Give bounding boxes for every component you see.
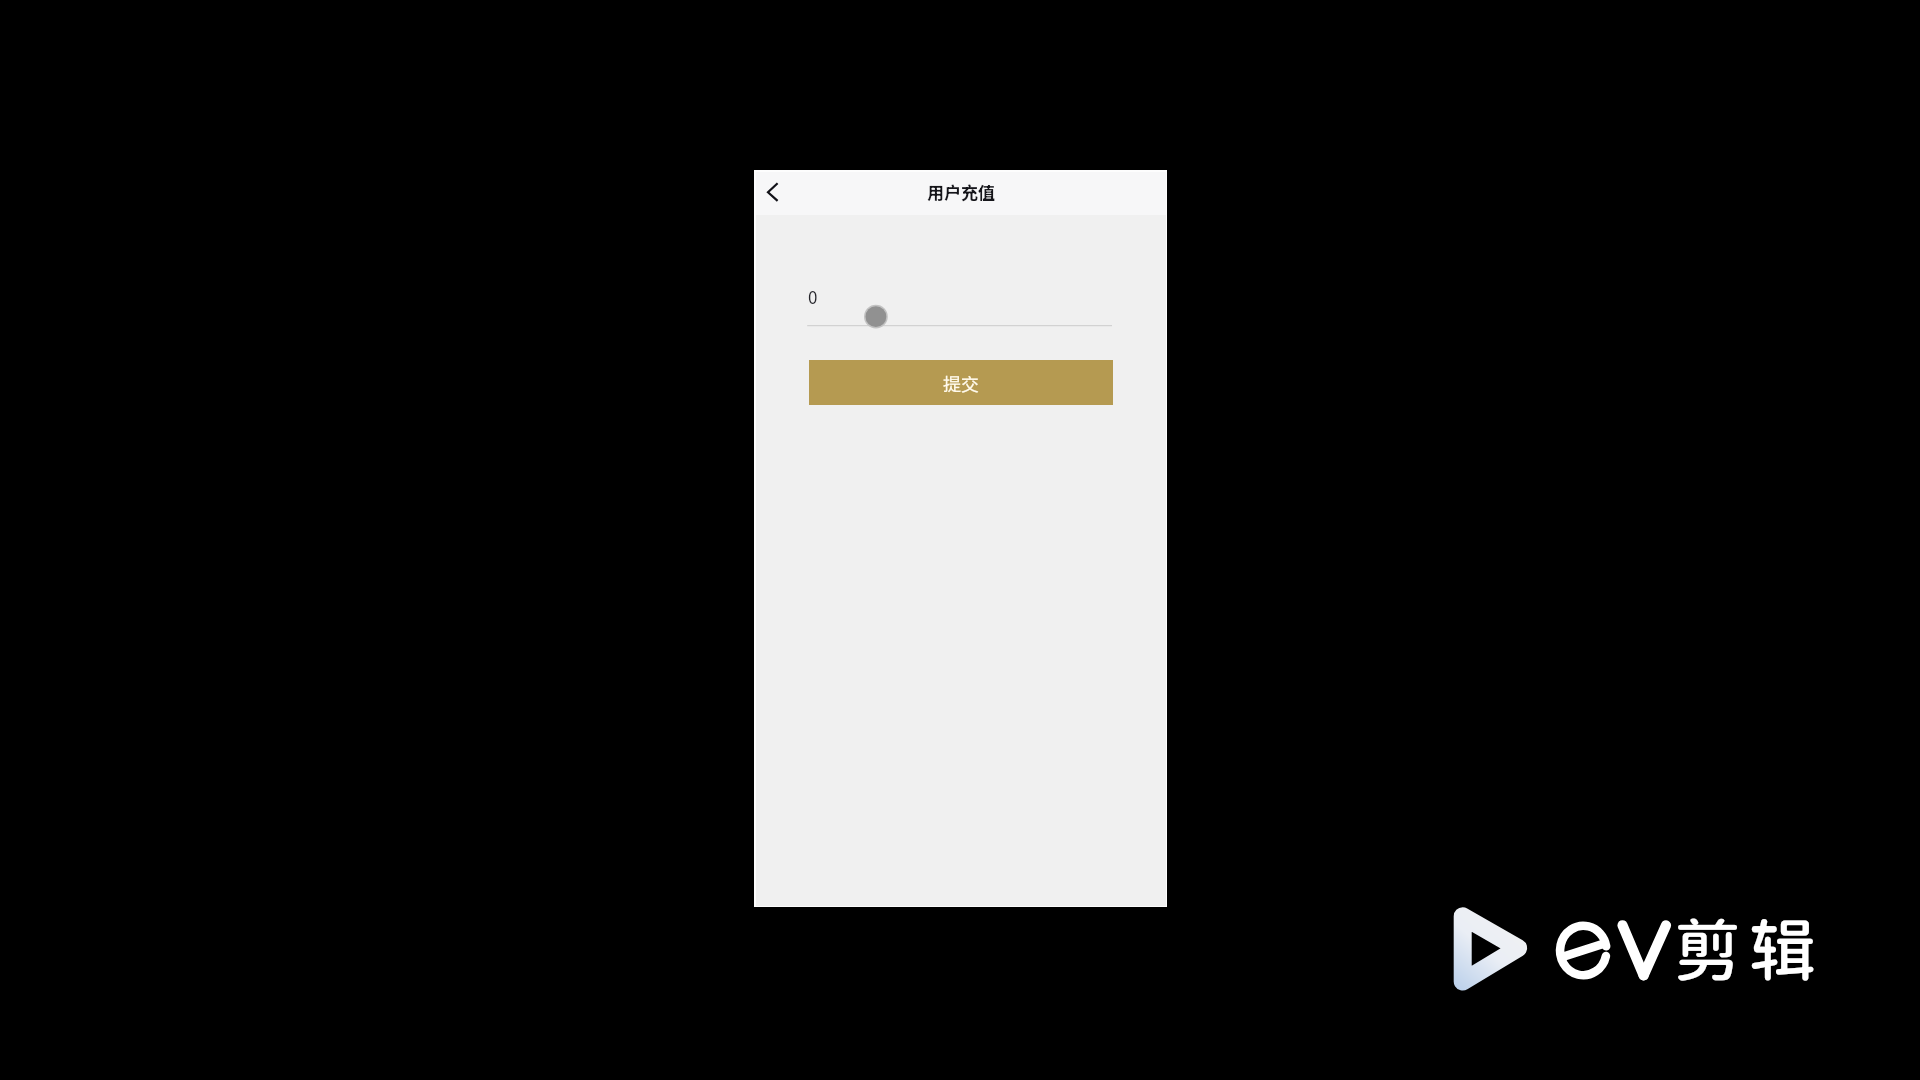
- staticText: 剪辑: [1674, 910, 1824, 989]
- button[interactable]: 提交: [809, 360, 1113, 405]
- staticText: 用户充值: [927, 179, 995, 204]
- staticText: 提交: [943, 370, 979, 396]
- staticText: 0: [808, 284, 818, 309]
- button[interactable]: Back: [756, 172, 800, 215]
- button[interactable]: Amount slider: [794, 304, 1127, 336]
